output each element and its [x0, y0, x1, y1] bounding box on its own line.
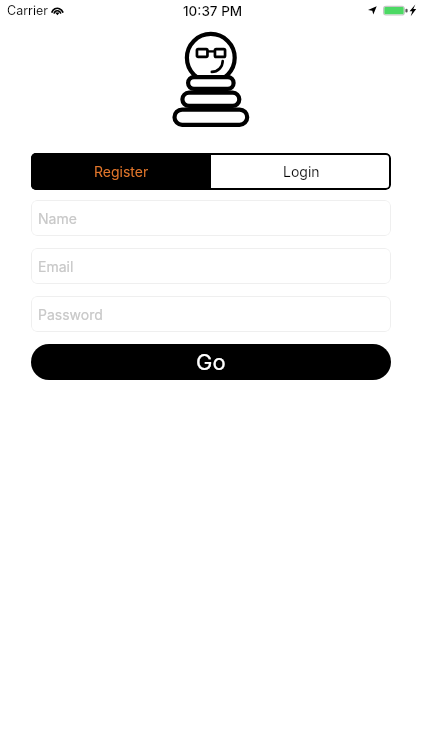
button[interactable]: Login [211, 153, 391, 190]
staticText: Register [94, 163, 149, 180]
staticText: Email [38, 258, 74, 275]
button[interactable]: Go [31, 344, 391, 380]
staticText: Carrier [7, 3, 48, 18]
button[interactable]: Register [31, 153, 211, 190]
staticText: Name [38, 210, 77, 227]
staticText: 10:37 PM [183, 3, 243, 19]
button[interactable]: Password [31, 296, 391, 332]
button[interactable]: Email [31, 248, 391, 284]
staticText: Go [196, 349, 226, 376]
button[interactable]: Name [31, 200, 391, 236]
staticText: Login [283, 163, 320, 180]
staticText: Password [38, 306, 103, 323]
